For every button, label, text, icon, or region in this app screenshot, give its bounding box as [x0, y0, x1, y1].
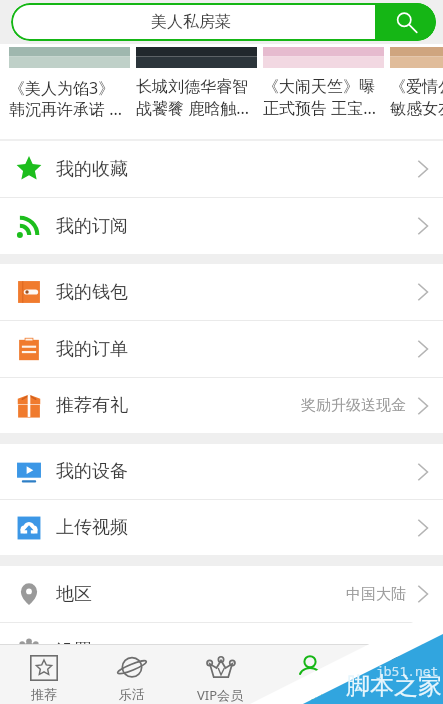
staticText: 我的订阅 [56, 215, 128, 238]
button[interactable]: 长城刘德华睿智 战饕餮 鹿晗触... [136, 44, 257, 119]
button[interactable]: 我的 [265, 645, 354, 704]
button[interactable]: 我的钱包 [0, 264, 443, 320]
button[interactable]: 我的设备 [0, 444, 443, 499]
button[interactable]: Search [375, 3, 436, 41]
button[interactable]: 地区 [0, 566, 443, 622]
button[interactable]: 《爱情公寓》最 敏感女友 ... [390, 44, 443, 119]
staticText: 上传视频 [56, 516, 128, 539]
button[interactable]: 更多 [354, 645, 443, 704]
staticText: 地区 [56, 583, 92, 606]
staticText: jb51.net [376, 662, 439, 680]
staticText: 《大闹天竺》曝 正式预告 王宝... [263, 77, 384, 119]
staticText: 设置 [56, 640, 92, 663]
button[interactable]: 我的收藏 [0, 141, 443, 197]
staticText: 我的收藏 [56, 158, 128, 181]
staticText: 脚本之家 [346, 671, 442, 701]
button[interactable]: 我的订单 [0, 321, 443, 377]
staticText: 美人私房菜 [151, 12, 231, 32]
staticText: 中国大陆 [346, 585, 406, 604]
staticText: 《爱情公寓》最 敏感女友 ... [390, 77, 443, 119]
button[interactable]: 乐活 [88, 645, 176, 704]
button[interactable]: VIP会员 [176, 645, 265, 704]
button[interactable]: 推荐有礼 [0, 378, 443, 433]
staticText: 乐活 [119, 686, 145, 702]
staticText: 我的设备 [56, 460, 128, 483]
staticText: 推荐有礼 [56, 394, 128, 417]
staticText: 《美人为馅3》 韩沉再许承诺 ... [9, 77, 130, 120]
staticText: 我的钱包 [56, 281, 128, 304]
button[interactable]: 设置 [0, 623, 443, 679]
staticText: 我的 [297, 686, 323, 702]
button[interactable]: 我的订阅 [0, 198, 443, 254]
button[interactable]: 《美人为馅3》 韩沉再许承诺 ... [9, 44, 130, 120]
button[interactable]: 上传视频 [0, 500, 443, 555]
staticText: 长城刘德华睿智 战饕餮 鹿晗触... [136, 77, 257, 119]
button[interactable]: 《大闹天竺》曝 正式预告 王宝... [263, 44, 384, 119]
staticText: VIP会员 [197, 686, 244, 704]
staticText: 奖励升级送现金 [301, 396, 406, 415]
button[interactable]: 推荐 [0, 645, 88, 704]
staticText: 推荐 [31, 686, 57, 702]
button[interactable]: 美人私房菜 [11, 3, 436, 41]
staticText: 我的订单 [56, 338, 128, 361]
staticText: 更多 [386, 686, 412, 702]
